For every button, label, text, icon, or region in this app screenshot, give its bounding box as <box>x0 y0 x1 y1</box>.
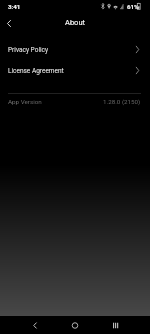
button[interactable]: Home <box>55 316 94 334</box>
button[interactable]: Privacy Policy <box>0 39 150 60</box>
staticText: 1.28.0 (2150) <box>103 98 141 105</box>
staticText: License Agreement <box>8 67 64 75</box>
staticText: 61% <box>127 3 139 10</box>
staticText: 3:41 <box>8 3 21 10</box>
button[interactable]: Recent apps <box>95 316 134 334</box>
staticText: About <box>65 18 85 27</box>
button[interactable]: Navigate up <box>0 14 18 32</box>
staticText: Privacy Policy <box>8 46 49 54</box>
button[interactable]: Back <box>15 316 54 334</box>
staticText: App Version <box>8 98 42 105</box>
button[interactable]: License Agreement <box>0 60 150 81</box>
